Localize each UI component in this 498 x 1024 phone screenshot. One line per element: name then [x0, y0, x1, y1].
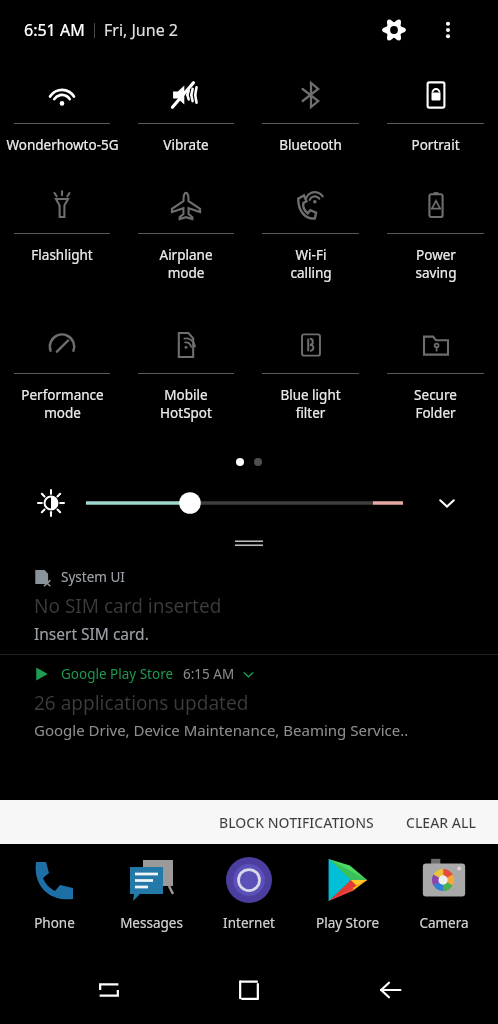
staticText: Internet: [223, 914, 275, 932]
staticText: CLEAR ALL: [406, 813, 476, 832]
staticText: Camera: [419, 914, 469, 932]
button[interactable]: Flashlight: [0, 170, 124, 310]
button[interactable]: Home: [217, 958, 281, 1022]
button[interactable]: Wonderhowto-5G: [0, 60, 124, 170]
button[interactable]: Back: [358, 958, 422, 1022]
button[interactable]: Wi-Fi calling: [248, 170, 373, 310]
staticText: Messages: [120, 914, 183, 932]
button[interactable]: Google Play Store: [0, 655, 498, 752]
button[interactable]: Airplane mode: [124, 170, 248, 310]
staticText: Wi-Fi calling: [290, 246, 332, 282]
staticText: Secure Folder: [414, 386, 457, 422]
button[interactable]: More options: [428, 10, 468, 50]
button[interactable]: BLOCK NOTIFICATIONS: [203, 800, 390, 844]
button[interactable]: Performance mode: [0, 310, 124, 450]
button[interactable]: Recents: [77, 958, 141, 1022]
button[interactable]: Bluetooth: [248, 60, 373, 170]
staticText: 6:15 AM: [183, 665, 235, 683]
button[interactable]: Play Store: [303, 852, 391, 932]
staticText: Blue light filter: [280, 386, 341, 422]
button[interactable]: Power saving: [373, 170, 498, 310]
button[interactable]: Brightness slider: [86, 483, 403, 523]
staticText: Play Store: [316, 914, 379, 932]
button[interactable]: System UI: [0, 560, 498, 654]
button[interactable]: Expand brightness settings: [426, 482, 468, 524]
staticText: No SIM card inserted: [34, 593, 222, 619]
staticText: Power saving: [415, 246, 457, 282]
staticText: Vibrate: [163, 136, 209, 154]
staticText: Bluetooth: [279, 136, 342, 154]
staticText: Flashlight: [31, 246, 93, 264]
staticText: 6:51 AM: [24, 19, 85, 41]
staticText: Performance mode: [21, 386, 104, 422]
staticText: Wonderhowto-5G: [6, 136, 119, 154]
button[interactable]: Camera: [400, 852, 488, 932]
staticText: Airplane mode: [159, 246, 213, 282]
staticText: Insert SIM card.: [34, 623, 149, 644]
button[interactable]: Messages: [107, 852, 195, 932]
staticText: Google Drive, Device Maintenance, Beamin…: [34, 720, 409, 740]
staticText: Portrait: [411, 136, 460, 154]
button[interactable]: Secure Folder: [373, 310, 498, 450]
button[interactable]: Internet: [205, 852, 293, 932]
staticText: Google Play Store: [61, 665, 174, 683]
staticText: Phone: [34, 914, 75, 932]
staticText: Mobile HotSpot: [160, 386, 212, 422]
staticText: System UI: [61, 568, 125, 586]
staticText: BLOCK NOTIFICATIONS: [219, 813, 374, 832]
button[interactable]: Portrait: [373, 60, 498, 170]
button[interactable]: Blue light filter: [248, 310, 373, 450]
button[interactable]: Settings: [374, 10, 414, 50]
button[interactable]: Mobile HotSpot: [124, 310, 248, 450]
staticText: Fri, June 2: [104, 19, 178, 41]
button[interactable]: Drag handle: [0, 532, 498, 554]
button[interactable]: Auto brightness: [30, 482, 72, 524]
staticText: 26 applications updated: [34, 690, 249, 716]
button[interactable]: CLEAR ALL: [390, 800, 498, 844]
button[interactable]: Phone: [10, 852, 98, 932]
button[interactable]: Vibrate: [124, 60, 248, 170]
